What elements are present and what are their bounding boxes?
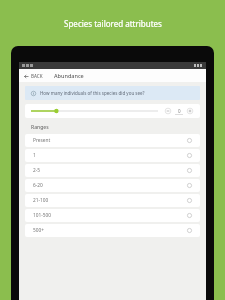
button[interactable]: 21-100 [25, 194, 200, 207]
staticText: How many individuals of this species did… [40, 90, 145, 96]
button[interactable]: 1 [25, 149, 200, 162]
staticText: Present [33, 137, 51, 144]
staticText: Abundance [54, 72, 84, 79]
staticText: 2-5 [33, 167, 41, 174]
button[interactable]: 500+ [25, 224, 200, 237]
button[interactable]: 6-20 [25, 179, 200, 192]
button[interactable] [31, 106, 158, 116]
staticText: BACK [31, 73, 43, 79]
staticText: Ranges [31, 124, 49, 131]
button[interactable]: Present [25, 134, 200, 147]
button[interactable]: How many individuals of this species did… [25, 86, 200, 100]
button[interactable]: Back [19, 71, 48, 81]
staticText: 6-20 [33, 182, 43, 189]
button[interactable]: Decrease [164, 107, 172, 115]
staticText: 21-100 [33, 197, 49, 204]
staticText: 1 [33, 152, 36, 159]
staticText: 101-500 [33, 212, 52, 219]
staticText: Species tailored attributes [64, 18, 162, 29]
staticText: 500+ [33, 227, 44, 234]
button[interactable]: Increase [186, 107, 194, 115]
button[interactable]: 2-5 [25, 164, 200, 177]
other: Back [24, 74, 29, 79]
button[interactable]: 101-500 [25, 209, 200, 222]
staticText: 0 [178, 108, 181, 114]
